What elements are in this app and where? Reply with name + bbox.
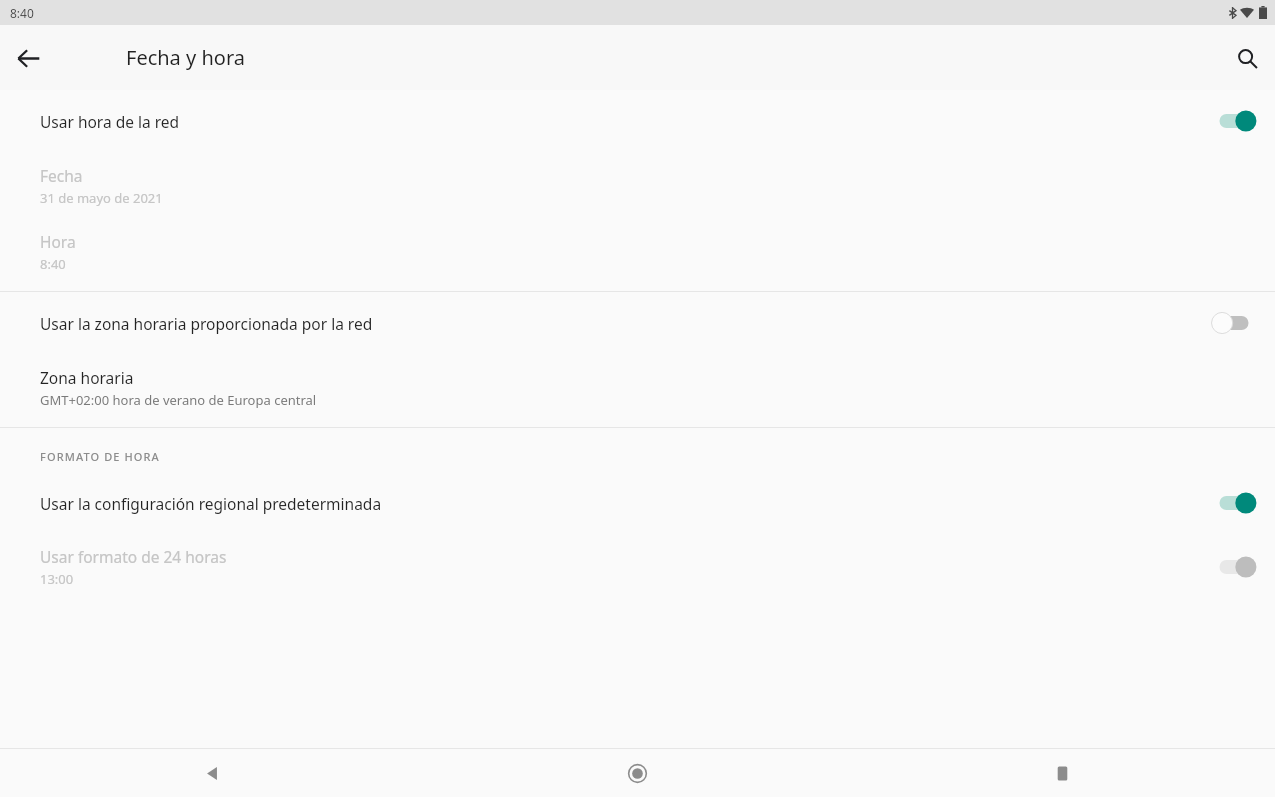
staticText: 13:00 xyxy=(40,570,74,588)
button[interactable]: Recent apps xyxy=(850,749,1275,797)
button[interactable]: Toggle xyxy=(1207,305,1261,341)
button[interactable]: Usar la configuración regional predeterm… xyxy=(0,472,1275,534)
button[interactable]: Toggle xyxy=(1207,103,1261,139)
button[interactable]: Toggle xyxy=(1207,485,1261,521)
button[interactable]: Zona horaria xyxy=(0,354,1275,421)
staticText: 8:40 xyxy=(40,255,66,273)
button[interactable]: Search xyxy=(1223,34,1271,82)
staticText: 31 de mayo de 2021 xyxy=(40,189,163,207)
staticText: Usar la zona horaria proporcionada por l… xyxy=(40,313,1207,334)
staticText: Fecha y hora xyxy=(126,44,245,71)
button[interactable]: Home xyxy=(425,749,850,797)
button[interactable]: Back xyxy=(4,34,52,82)
staticText: GMT+02:00 hora de verano de Europa centr… xyxy=(40,391,317,409)
staticText: Usar formato de 24 horas xyxy=(40,546,227,567)
staticText: Zona horaria xyxy=(40,367,134,388)
button[interactable]: Fecha xyxy=(0,152,1275,219)
button[interactable]: Toggle xyxy=(1207,549,1261,585)
staticText: FORMATO DE HORA xyxy=(40,449,160,464)
staticText: Hora xyxy=(40,231,76,252)
button[interactable]: Usar la zona horaria proporcionada por l… xyxy=(0,292,1275,354)
staticText: Usar hora de la red xyxy=(40,111,1207,132)
button[interactable]: Usar hora de la red xyxy=(0,90,1275,152)
staticText: Fecha xyxy=(40,165,83,186)
button[interactable]: Back xyxy=(0,749,425,797)
staticText: 8:40 xyxy=(10,5,34,21)
button[interactable]: Usar formato de 24 horas xyxy=(0,534,1275,600)
staticText: Usar la configuración regional predeterm… xyxy=(40,493,1207,514)
